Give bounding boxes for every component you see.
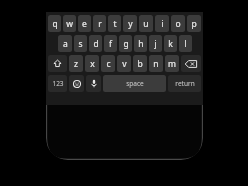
button[interactable]: n [149,55,163,72]
button[interactable]: r [93,15,106,32]
staticText: o [175,18,181,30]
button[interactable]: e [78,15,91,32]
button[interactable]: return [168,75,201,92]
staticText: a [63,38,68,50]
button[interactable]: c [101,55,115,72]
staticText: n [153,58,159,70]
button[interactable]: s [74,35,87,52]
button[interactable]: k [164,35,177,52]
staticText: s [78,38,83,50]
button[interactable]: Shift [48,55,67,72]
button[interactable]: l [179,35,192,52]
staticText: k [168,38,173,50]
button[interactable]: space [103,75,166,92]
button[interactable]: f [104,35,117,52]
button[interactable]: w [63,15,76,32]
button[interactable]: p [187,15,201,32]
button[interactable]: d [89,35,102,52]
staticText: space [126,79,144,88]
staticText: x [90,58,95,70]
staticText: u [143,18,149,30]
button[interactable]: i [155,15,169,32]
button[interactable]: t [108,15,121,32]
button[interactable]: q [48,15,61,32]
staticText: d [93,38,99,50]
staticText: f [109,38,112,50]
staticText: e [82,18,87,30]
staticText: t [113,18,117,30]
button[interactable]: j [149,35,162,52]
button[interactable]: a [58,35,72,52]
staticText: p [191,18,197,30]
staticText: i [161,18,164,30]
button[interactable]: m [165,55,179,72]
staticText: r [98,18,102,30]
staticText: q [52,18,58,30]
button[interactable]: y [123,15,137,32]
staticText: j [154,38,157,50]
button[interactable]: z [69,55,83,72]
staticText: 123 [52,79,64,88]
staticText: v [122,58,127,70]
button[interactable]: h [134,35,147,52]
staticText: h [138,38,144,50]
button[interactable]: u [139,15,153,32]
staticText: w [66,18,73,30]
staticText: g [123,38,129,50]
staticText: m [168,58,176,70]
staticText: return [175,79,195,88]
staticText: b [137,58,143,70]
button[interactable]: Backspace [181,55,201,72]
button[interactable]: o [171,15,185,32]
staticText: l [184,38,187,50]
button[interactable]: b [133,55,147,72]
button[interactable]: 123 [48,75,67,92]
button[interactable]: g [119,35,132,52]
button[interactable]: x [85,55,99,72]
staticText: c [106,58,111,70]
button[interactable]: Emoji [69,75,84,92]
button[interactable]: Voice input [86,75,101,92]
staticText: y [128,18,133,30]
button[interactable]: v [117,55,131,72]
staticText: z [74,58,78,70]
